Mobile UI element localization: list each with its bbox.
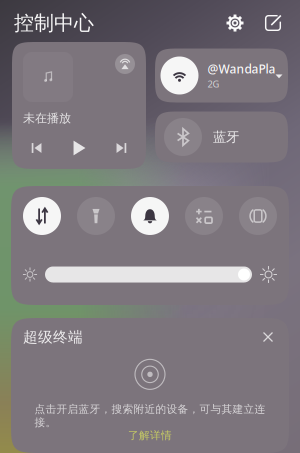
button[interactable]: 手电筒 — [77, 197, 115, 235]
staticText: 超级终端 — [23, 328, 83, 346]
button[interactable]: 输出设备 — [115, 54, 135, 74]
button[interactable]: 上一首 — [24, 136, 48, 160]
button[interactable]: 移动数据 — [23, 197, 61, 235]
button[interactable]: 搜索设备 — [131, 355, 169, 393]
button[interactable]: 播放 — [67, 136, 91, 160]
button[interactable]: 响铃 — [131, 197, 169, 235]
button[interactable]: 媒体播放 — [12, 42, 146, 169]
staticText: 点击开启蓝牙，搜索附近的设备，可与其建立连接。 — [34, 403, 265, 429]
button[interactable]: 编辑 — [260, 10, 286, 36]
staticText: 蓝牙 — [213, 129, 239, 145]
button[interactable]: 无线局域网 @WandaPla — [155, 48, 288, 102]
button[interactable]: 亮度 — [45, 266, 252, 282]
button[interactable]: 关闭 — [259, 328, 277, 346]
staticText: 2G — [207, 78, 219, 90]
staticText: 控制中心 — [14, 11, 94, 35]
staticText: 了解详情 — [128, 429, 172, 442]
staticText: @WandaPla — [207, 61, 275, 77]
staticText: 未在播放 — [23, 111, 71, 126]
button[interactable]: 设置 — [222, 10, 248, 36]
button[interactable]: 屏幕旋转 — [239, 197, 277, 235]
button[interactable]: 蓝牙 — [155, 111, 288, 162]
button[interactable]: 计算器 — [185, 197, 223, 235]
button[interactable]: 下一首 — [110, 136, 134, 160]
